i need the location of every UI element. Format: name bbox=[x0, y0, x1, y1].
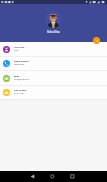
button[interactable]: Email bbox=[0, 71, 107, 86]
button[interactable]: Edit profile bbox=[93, 37, 100, 44]
button[interactable]: Mobile Number bbox=[0, 56, 107, 71]
staticText: Date Of Birth bbox=[14, 89, 27, 92]
button[interactable]: Date Of Birth bbox=[0, 85, 107, 100]
staticText: User Name bbox=[14, 46, 25, 49]
staticText: 9999999999 bbox=[14, 63, 25, 65]
button[interactable]: Back bbox=[22, 171, 42, 182]
button[interactable]: User Name bbox=[0, 42, 107, 57]
staticText: rahul bbox=[14, 49, 19, 51]
staticText: rahul@gmail.com bbox=[14, 78, 30, 80]
staticText: 01/01/1990 bbox=[14, 92, 24, 94]
staticText: Rahul Das bbox=[47, 30, 60, 34]
button[interactable]: Recent apps bbox=[62, 171, 82, 182]
staticText: Email bbox=[14, 75, 20, 78]
button[interactable]: Home bbox=[42, 171, 62, 182]
staticText: Mobile Number bbox=[14, 60, 29, 63]
